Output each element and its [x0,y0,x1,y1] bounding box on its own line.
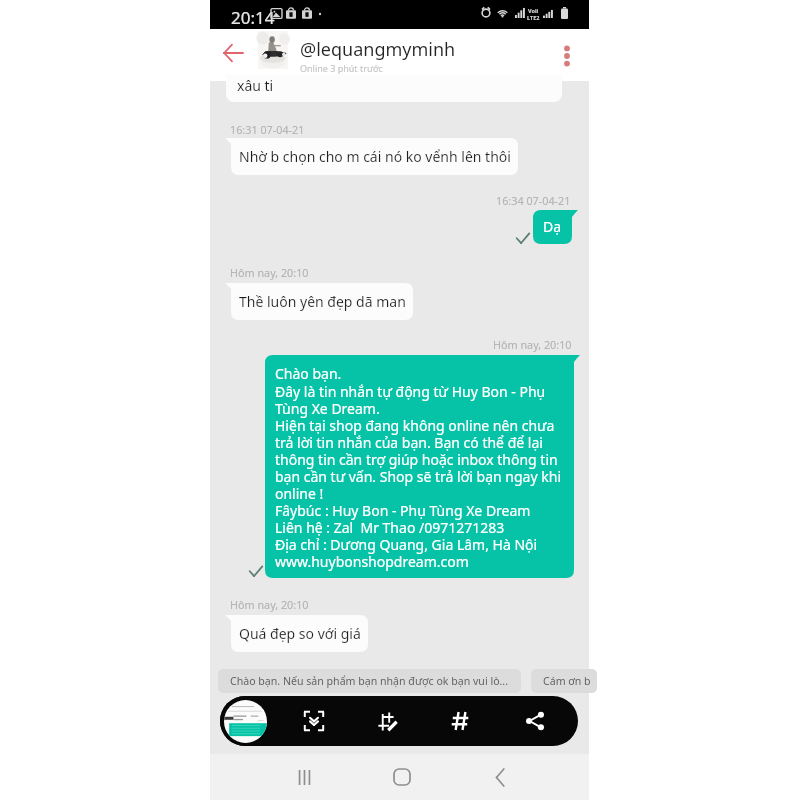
staticText: Hôm nay, 20:10 [230,265,309,280]
button[interactable]: Cám ơn b [531,669,597,693]
staticText: Quá đẹp so với giá [239,624,361,643]
button[interactable]: xâu ti [226,74,562,102]
staticText: LTE2 [527,14,540,21]
button[interactable]: Chào bạn. Nếu sản phẩm bạn nhận được ok … [218,669,521,693]
button[interactable]: Chào bạn. Đây là tin nhắn tự động từ Huy… [265,355,580,578]
button[interactable]: Back [212,32,254,74]
staticText: Chào bạn. Nếu sản phẩm bạn nhận được ok … [230,674,509,688]
button[interactable]: Quá đẹp so với giá [225,615,368,652]
staticText: Hôm nay, 20:10 [493,337,572,352]
staticText: 16:34 07-04-21 [496,193,571,208]
staticText: Hôm nay, 20:10 [230,597,309,612]
staticText: xâu ti [237,76,274,95]
staticText: 16:31 07-04-21 [230,122,305,137]
staticText: 20:14 [231,6,275,29]
staticText: Dạ [543,217,562,236]
staticText: Cám ơn b [543,674,591,688]
button[interactable]: Nhờ b chọn cho m cái nó ko vểnh lên thôi [225,138,518,175]
staticText: Chào bạn. Đây là tin nhắn tự động từ Huy… [275,364,561,571]
button[interactable]: Recents [280,754,328,800]
staticText: Online 3 phút trước [300,62,383,74]
button[interactable]: Screenshot preview [220,696,270,746]
button[interactable]: Scroll capture [293,700,335,742]
staticText: Nhờ b chọn cho m cái nó ko vểnh lên thôi [239,147,511,166]
button[interactable]: More options [546,35,588,77]
button[interactable]: Thề luôn yên đẹp dã man [225,283,413,320]
staticText: Voii [528,7,539,14]
staticText: Thề luôn yên đẹp dã man [239,292,406,311]
button[interactable]: Crop and edit [366,700,408,742]
button[interactable]: Add hashtag [439,700,481,742]
button[interactable]: Home [378,754,426,800]
button[interactable]: Back [476,754,524,800]
button[interactable]: Share [514,700,556,742]
staticText: @lequangmyminh [300,37,456,62]
button[interactable]: Dạ [533,210,578,244]
